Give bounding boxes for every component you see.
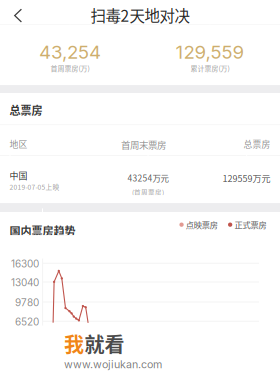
staticText: 6520 [15,316,39,328]
staticText: 点映票房 [186,219,218,231]
staticText: 43254万元 [128,172,169,184]
staticText: 总票房 [9,102,42,118]
staticText: 13040 [11,276,39,289]
staticText: (首周票房) [132,188,164,197]
staticText: 正式票房 [234,219,266,231]
staticText: 国内票房趋势 [9,223,75,239]
staticText: 129,559 [175,41,244,63]
staticText: www.wojiukan.com [64,358,162,371]
staticText: 2019-07-05上映 [9,182,59,192]
staticText: 就看 [84,329,124,358]
staticText: 首周末票房 [121,138,166,151]
button[interactable]: Back [0,0,44,24]
staticText: 9780 [15,296,39,309]
staticText: 总票房 [244,138,271,150]
staticText: 43,254 [39,41,101,63]
staticText: 首周票房(万) [50,63,89,73]
staticText: 扫毒2天地对决 [90,4,189,26]
staticText: 地区 [10,138,28,150]
staticText: 我 [64,329,84,358]
staticText: 16300 [11,258,39,270]
staticText: 中国 [9,169,27,182]
staticText: 累计票房(万) [190,63,229,73]
staticText: 129559万元 [223,172,271,185]
